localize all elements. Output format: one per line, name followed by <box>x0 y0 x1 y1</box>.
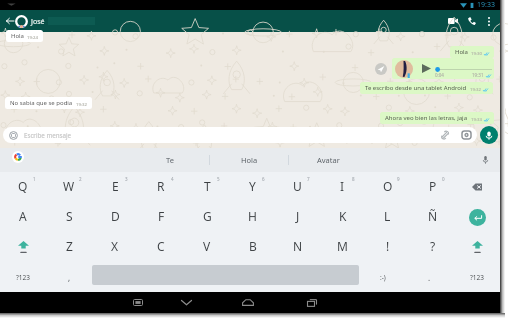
staticText: Escribe mensaje <box>24 131 72 139</box>
button[interactable]: Shift <box>0 232 46 262</box>
staticText: ?123 <box>16 273 30 282</box>
staticText: H <box>248 208 257 224</box>
button[interactable]: Q <box>0 172 46 202</box>
staticText: Te escribo desde una tablet Android <box>365 84 467 92</box>
staticText: C <box>157 238 165 254</box>
button[interactable]: Te escribo desde una tablet Android <box>360 82 493 94</box>
button[interactable]: X <box>92 232 138 262</box>
staticText: V <box>203 238 211 254</box>
button[interactable]: R <box>138 172 184 202</box>
button[interactable]: No sabia que se podia <box>5 97 92 109</box>
staticText: 19:30 <box>471 50 482 56</box>
button[interactable]: Hola <box>6 30 43 42</box>
staticText: José <box>31 17 45 27</box>
button[interactable]: A <box>0 202 46 232</box>
button[interactable]: Backspace <box>455 172 500 202</box>
button[interactable]: S <box>46 202 92 232</box>
button[interactable]: Z <box>46 232 92 262</box>
staticText: G <box>203 208 212 224</box>
button[interactable]: Hide keyboard <box>162 292 210 313</box>
button[interactable]: ?123 <box>453 262 500 292</box>
staticText: 19:33 <box>477 0 495 10</box>
button[interactable]: :-) <box>359 262 406 292</box>
staticText: Te <box>166 155 174 165</box>
button[interactable]: Record voice message <box>480 126 498 144</box>
staticText: 6 <box>262 176 265 182</box>
staticText: R <box>157 178 165 194</box>
button[interactable]: Voice call <box>462 10 481 32</box>
button[interactable]: Home <box>224 292 272 313</box>
button[interactable]: B <box>230 232 275 262</box>
staticText: 7 <box>307 176 310 182</box>
staticText: X <box>111 238 119 254</box>
staticText: . <box>428 272 431 283</box>
staticText: ? <box>430 238 436 254</box>
button[interactable]: 0:04 <box>392 58 494 79</box>
staticText: I <box>340 178 345 194</box>
staticText: ! <box>386 238 390 254</box>
button[interactable]: Video call <box>443 10 463 32</box>
staticText: S <box>66 208 73 224</box>
button[interactable]: Avatar <box>289 148 367 172</box>
button[interactable]: Y <box>230 172 275 202</box>
button[interactable]: W <box>46 172 92 202</box>
button[interactable]: I <box>320 172 365 202</box>
button[interactable]: K <box>320 202 365 232</box>
button[interactable]: H <box>230 202 275 232</box>
button[interactable]: Enter <box>455 202 500 232</box>
staticText: L <box>384 208 391 224</box>
button[interactable]: F <box>138 202 184 232</box>
button[interactable]: D <box>92 202 138 232</box>
button[interactable]: Recent apps <box>288 292 336 313</box>
button[interactable]: ! <box>365 232 410 262</box>
staticText: W <box>63 178 75 194</box>
button[interactable]: Attach <box>437 127 453 143</box>
staticText: Q <box>18 178 28 194</box>
staticText: 5 <box>217 176 220 182</box>
button[interactable]: Back <box>1 10 18 32</box>
staticText: D <box>111 208 120 224</box>
button[interactable]: Ahora veo bien las letras, jaja <box>380 112 494 124</box>
staticText: 2 <box>79 176 82 182</box>
staticText: O <box>383 178 393 194</box>
button[interactable]: N <box>275 232 320 262</box>
button[interactable]: M <box>320 232 365 262</box>
staticText: B <box>249 238 257 254</box>
button[interactable]: C <box>138 232 184 262</box>
staticText: M <box>337 238 348 254</box>
button[interactable]: Escribe mensaje <box>3 127 477 143</box>
staticText: No sabia que se podia <box>10 99 73 107</box>
staticText: Ahora veo bien las letras, jaja <box>385 114 468 122</box>
staticText: 9 <box>397 176 400 182</box>
button[interactable]: J <box>275 202 320 232</box>
button[interactable]: P <box>410 172 455 202</box>
button[interactable]: U <box>275 172 320 202</box>
button[interactable]: L <box>365 202 410 232</box>
staticText: 19:33 <box>471 116 482 122</box>
button[interactable]: O <box>365 172 410 202</box>
button[interactable]: G <box>184 202 230 232</box>
button[interactable]: V <box>184 232 230 262</box>
staticText: N <box>293 238 303 254</box>
button[interactable]: , <box>46 262 92 292</box>
button[interactable]: Contact photo <box>14 10 29 32</box>
button[interactable]: More options <box>480 10 497 32</box>
button[interactable]: Voice input <box>477 148 493 172</box>
staticText: , <box>68 272 71 283</box>
button[interactable]: ?123 <box>0 262 46 292</box>
button[interactable]: Te <box>131 148 209 172</box>
button[interactable]: Shift <box>455 232 500 262</box>
button[interactable]: T <box>184 172 230 202</box>
button[interactable]: ? <box>410 232 455 262</box>
button[interactable]: Keyboard <box>118 292 158 313</box>
staticText: 19:24 <box>27 34 38 40</box>
button[interactable]: Ñ <box>410 202 455 232</box>
staticText: J <box>296 208 300 224</box>
staticText: Z <box>66 238 73 254</box>
button[interactable]: Hola <box>210 148 288 172</box>
button[interactable]: Hola <box>450 46 494 58</box>
button[interactable]: E <box>92 172 138 202</box>
button[interactable]: Camera <box>458 127 474 143</box>
